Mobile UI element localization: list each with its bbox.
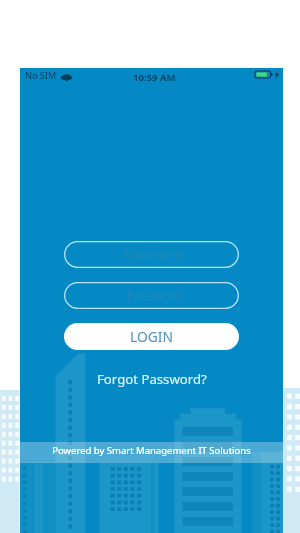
button[interactable]: LOGIN [64, 323, 239, 350]
staticText: Forgot Password? [97, 370, 207, 388]
staticText: Powered by Smart Management IT Solutions [20, 444, 283, 457]
staticText: Username [125, 246, 185, 263]
staticText: LOGIN [130, 327, 173, 346]
staticText: 10:59 AM [133, 71, 176, 84]
staticText: Password [127, 287, 183, 304]
staticText: No SIM [25, 69, 57, 81]
button[interactable]: Password [64, 282, 239, 309]
button[interactable]: Forgot Password? [20, 370, 283, 388]
button[interactable]: Username [64, 241, 239, 268]
